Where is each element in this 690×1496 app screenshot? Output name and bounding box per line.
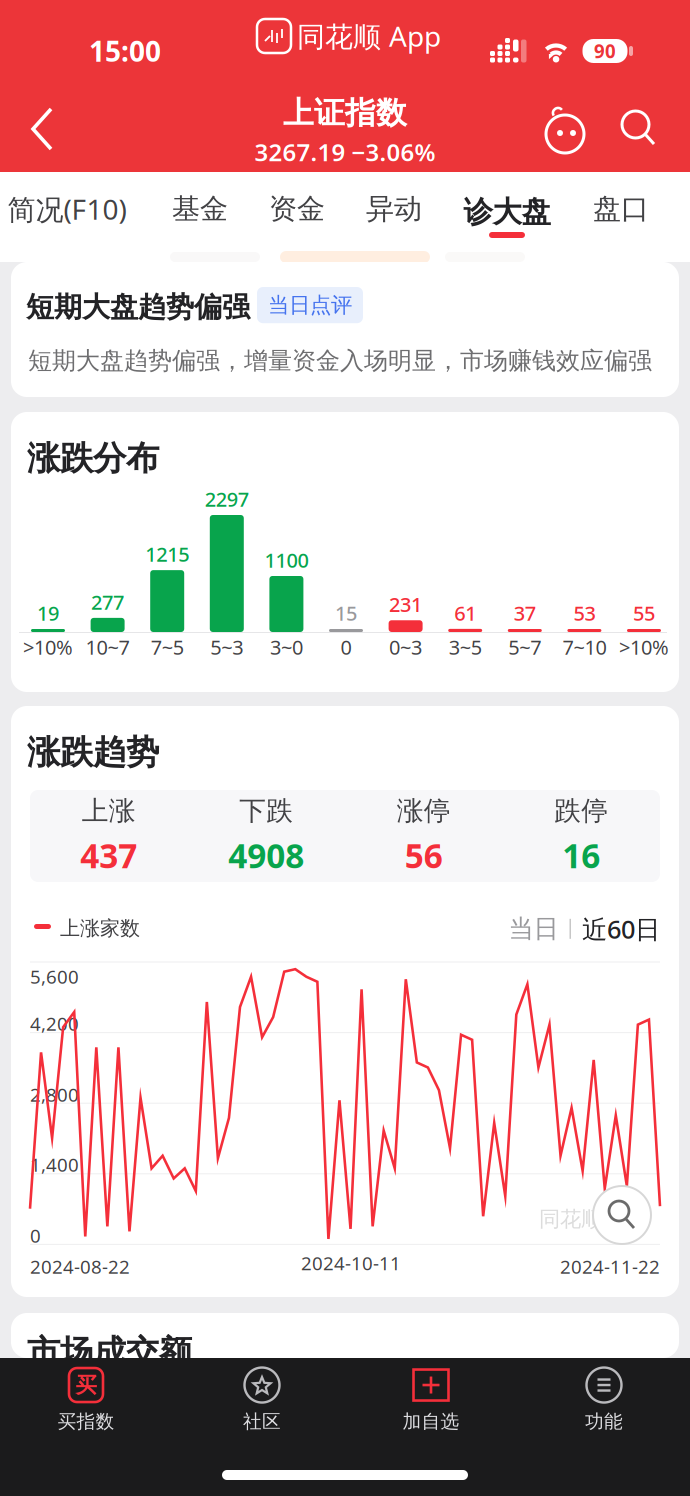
staticText: 7~10 (562, 634, 606, 660)
staticText: 当日 (508, 913, 558, 944)
staticText: 上涨 (82, 794, 136, 827)
staticText: 4,200 (30, 1011, 79, 1036)
button[interactable]: Search (621, 110, 657, 148)
staticText: 同花顺 (539, 1206, 602, 1232)
button[interactable]: 异动 (366, 192, 422, 226)
button[interactable]: 社区 (242, 1367, 282, 1433)
button[interactable]: 近60日 (582, 912, 660, 946)
staticText: 近60日 (582, 912, 660, 946)
button[interactable]: 盘口 (593, 192, 649, 226)
staticText: 1,400 (30, 1152, 79, 1177)
staticText: 资金 (269, 192, 325, 226)
staticText: 3~5 (449, 634, 482, 660)
staticText: 55 (633, 600, 655, 626)
staticText: 16 (562, 833, 600, 877)
staticText: >10% (23, 634, 73, 660)
staticText: 诊大盘 (463, 194, 550, 230)
staticText: 涨停 (397, 794, 451, 827)
button[interactable]: AI assistant (540, 107, 590, 153)
button[interactable]: 诊大盘 (457, 172, 557, 248)
button[interactable]: 基金 (172, 192, 228, 226)
button[interactable]: 资金 (269, 192, 325, 226)
staticText: 15 (335, 600, 357, 626)
button[interactable]: 当日点评 (257, 287, 363, 323)
staticText: 功能 (585, 1410, 623, 1433)
staticText: 上涨家数 (60, 916, 140, 941)
staticText: 10~7 (86, 634, 130, 660)
staticText: 90 (594, 39, 616, 63)
staticText: 同花顺 App (297, 17, 441, 55)
button[interactable]: Inspect chart (593, 1186, 651, 1244)
staticText: 异动 (366, 192, 422, 226)
staticText: 短期大盘趋势偏强，增量资金入场明显，市场赚钱效应偏强 (28, 346, 652, 375)
staticText: 基金 (172, 192, 228, 226)
button[interactable]: Back (28, 106, 58, 152)
staticText: 买指数 (57, 1410, 114, 1433)
button[interactable]: 加自选 (402, 1367, 459, 1433)
staticText: 1215 (145, 541, 189, 567)
staticText: 加自选 (402, 1410, 459, 1433)
staticText: 19 (37, 600, 59, 626)
staticText: 0 (30, 1223, 41, 1248)
staticText: 2024-10-11 (301, 1251, 401, 1275)
staticText: 277 (91, 589, 124, 615)
staticText: 简况(F10) (7, 190, 126, 228)
staticText: 5~7 (508, 634, 541, 660)
staticText: 3267.19 −3.06% (254, 136, 435, 168)
staticText: 0 (340, 634, 351, 660)
staticText: 买 (75, 1372, 96, 1398)
staticText: 2297 (205, 486, 249, 512)
staticText: 当日点评 (268, 292, 352, 318)
staticText: 2,800 (30, 1082, 79, 1107)
staticText: 市场成交额 (27, 1332, 192, 1373)
staticText: 5,600 (30, 964, 79, 989)
staticText: 1100 (264, 547, 308, 573)
staticText: 下跌 (239, 794, 293, 827)
button[interactable]: 简况(F10) (7, 190, 126, 228)
staticText: 涨跌趋势 (27, 732, 159, 773)
staticText: 社区 (243, 1410, 281, 1433)
staticText: 短期大盘趋势偏强 (26, 290, 250, 324)
staticText: >10% (619, 634, 669, 660)
staticText: 56 (405, 833, 443, 877)
button[interactable]: 买 (57, 1367, 114, 1433)
staticText: 5~3 (210, 634, 243, 660)
staticText: 涨跌分布 (27, 438, 159, 479)
staticText: 4908 (228, 833, 304, 877)
staticText: 61 (454, 600, 476, 626)
staticText: 7~5 (151, 634, 184, 660)
staticText: 0~3 (389, 634, 422, 660)
staticText: 盘口 (593, 192, 649, 226)
button[interactable]: 功能 (584, 1367, 624, 1433)
staticText: 231 (389, 591, 422, 618)
staticText: 跌停 (554, 794, 608, 827)
staticText: 15:00 (89, 32, 161, 70)
staticText: 53 (573, 600, 595, 626)
staticText: 3~0 (270, 634, 303, 660)
button[interactable]: 当日 (508, 913, 558, 944)
staticText: 2024-08-22 (30, 1254, 130, 1279)
staticText: 37 (514, 600, 536, 626)
staticText: 2024-11-22 (560, 1254, 660, 1279)
staticText: 上证指数 (283, 94, 407, 132)
staticText: 437 (80, 833, 137, 877)
